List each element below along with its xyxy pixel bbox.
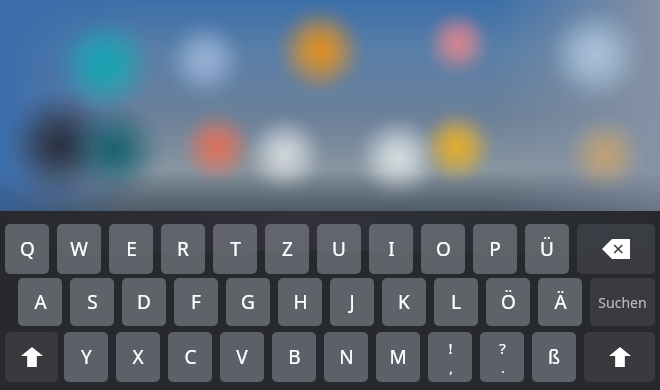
staticText: U [332, 236, 346, 262]
staticText: A [34, 289, 47, 315]
button[interactable]: W [57, 224, 101, 274]
button[interactable]: ? [480, 332, 524, 382]
staticText: I [388, 236, 395, 262]
button[interactable]: O [421, 224, 465, 274]
button[interactable]: D [122, 278, 166, 326]
staticText: J [349, 289, 355, 315]
button[interactable]: ß [532, 332, 576, 382]
staticText: L [451, 289, 461, 315]
staticText: V [236, 344, 248, 370]
button[interactable]: J [330, 278, 374, 326]
staticText: X [132, 344, 144, 370]
staticText: O [436, 236, 451, 262]
button[interactable]: F [174, 278, 218, 326]
button[interactable]: X [116, 332, 160, 382]
staticText: ! [448, 338, 453, 358]
button[interactable]: V [220, 332, 264, 382]
button[interactable]: A [18, 278, 62, 326]
button[interactable]: P [473, 224, 517, 274]
staticText: F [191, 289, 201, 315]
button[interactable]: Shift [5, 332, 58, 382]
staticText: C [184, 344, 197, 370]
staticText: Y [81, 344, 92, 370]
button[interactable]: Q [5, 224, 49, 274]
button[interactable]: T [213, 224, 257, 274]
button[interactable]: Shift [584, 332, 655, 382]
button[interactable]: G [226, 278, 270, 326]
button[interactable]: Y [64, 332, 108, 382]
button[interactable]: B [272, 332, 316, 382]
button[interactable]: C [168, 332, 212, 382]
button[interactable]: L [434, 278, 478, 326]
staticText: R [177, 236, 189, 262]
staticText: Ü [540, 236, 554, 262]
staticText: ß [548, 344, 560, 370]
staticText: E [126, 236, 137, 262]
staticText: N [339, 344, 354, 370]
staticText: S [87, 289, 98, 315]
button[interactable]: R [161, 224, 205, 274]
button[interactable]: Ö [486, 278, 530, 326]
button[interactable]: K [382, 278, 426, 326]
staticText: G [241, 289, 255, 315]
button[interactable]: H [278, 278, 322, 326]
button[interactable]: Suchen [590, 278, 655, 326]
staticText: Ö [501, 289, 516, 315]
staticText: . [501, 359, 505, 377]
button[interactable]: Z [265, 224, 309, 274]
staticText: M [389, 344, 407, 370]
staticText: D [137, 289, 151, 315]
staticText: Z [282, 236, 293, 262]
staticText: W [70, 236, 88, 262]
button[interactable]: U [317, 224, 361, 274]
staticText: Ä [554, 289, 567, 315]
button[interactable]: Ü [525, 224, 569, 274]
button[interactable]: Ä [538, 278, 582, 326]
button[interactable]: N [324, 332, 368, 382]
staticText: K [398, 289, 410, 315]
staticText: ? [499, 338, 506, 358]
button[interactable]: ! [428, 332, 472, 382]
button[interactable]: I [369, 224, 413, 274]
button[interactable]: M [376, 332, 420, 382]
staticText: B [288, 344, 301, 370]
staticText: H [293, 289, 308, 315]
staticText: T [230, 236, 241, 262]
staticText: P [489, 236, 501, 262]
button[interactable]: E [109, 224, 153, 274]
staticText: , [449, 359, 453, 377]
staticText: Suchen [598, 293, 647, 312]
button[interactable]: Backspace [577, 224, 655, 274]
staticText: Q [20, 236, 35, 262]
button[interactable]: S [70, 278, 114, 326]
